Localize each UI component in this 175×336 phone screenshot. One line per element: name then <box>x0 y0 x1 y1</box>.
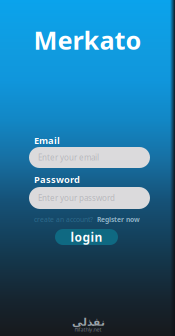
staticText: Enter your password <box>38 193 115 203</box>
staticText: Merkato <box>33 23 141 57</box>
staticText: nifathly.net <box>74 326 101 333</box>
staticText: Password <box>34 173 80 186</box>
staticText: نفذلي <box>71 316 104 328</box>
staticText: Email <box>34 134 60 147</box>
button[interactable]: Enter your email <box>29 147 150 168</box>
button[interactable]: Enter your password <box>29 187 150 209</box>
button[interactable]: Register now <box>97 215 142 223</box>
staticText: login <box>70 229 102 245</box>
staticText: create an account? <box>34 215 93 224</box>
staticText: Register now <box>97 215 140 224</box>
staticText: Enter your email <box>38 152 99 163</box>
button[interactable]: login <box>55 229 118 245</box>
